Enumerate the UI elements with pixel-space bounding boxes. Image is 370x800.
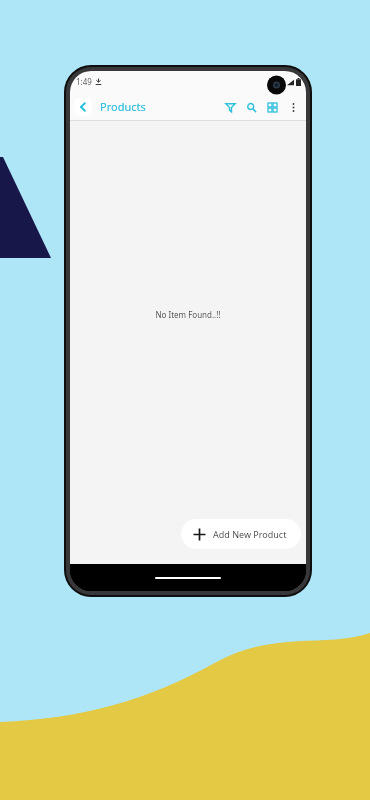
button[interactable]: More options xyxy=(284,98,302,116)
staticText: Add New Product xyxy=(213,528,287,540)
staticText: 1:49 xyxy=(76,76,92,87)
staticText: No Item Found..!! xyxy=(155,309,221,320)
button[interactable]: Filter xyxy=(221,98,239,116)
button[interactable]: Search xyxy=(242,98,260,116)
staticText: Products xyxy=(100,99,146,114)
button[interactable]: Back xyxy=(74,98,92,116)
button[interactable]: Add New Product xyxy=(181,519,301,549)
button[interactable]: Grid view xyxy=(263,98,281,116)
